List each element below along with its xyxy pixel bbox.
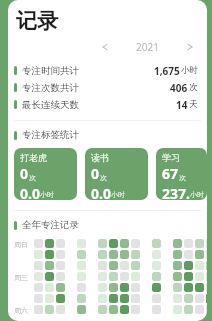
button[interactable]: 专注时间共计 bbox=[8, 62, 207, 79]
staticText: 1,675 bbox=[154, 64, 180, 78]
staticText: 次 bbox=[100, 173, 107, 182]
staticText: 67 bbox=[162, 164, 179, 183]
staticText: 全年专注记录 bbox=[22, 219, 79, 231]
button[interactable]: 学习 bbox=[156, 148, 207, 200]
button[interactable]: 专注次数共计 bbox=[8, 79, 207, 96]
staticText: 记录 bbox=[16, 8, 58, 34]
button[interactable]: 读书 bbox=[85, 148, 148, 200]
staticText: 0.0 bbox=[91, 184, 111, 200]
staticText: 专注标签统计 bbox=[22, 129, 79, 141]
staticText: 小时 bbox=[40, 190, 54, 199]
button[interactable]: 打老虎 bbox=[14, 148, 77, 200]
staticText: 次 bbox=[179, 173, 186, 182]
staticText: 最长连续天数 bbox=[22, 99, 79, 111]
staticText: 周三 bbox=[14, 273, 28, 282]
staticText: 学习 bbox=[162, 152, 180, 163]
staticText: 0 bbox=[20, 164, 29, 183]
staticText: 237. bbox=[162, 184, 190, 200]
button[interactable]: Previous year bbox=[96, 38, 114, 56]
staticText: 0 bbox=[91, 164, 100, 183]
staticText: 专注时间共计 bbox=[22, 65, 79, 77]
staticText: 专注次数共计 bbox=[22, 82, 79, 94]
button[interactable]: Next year bbox=[181, 38, 199, 56]
staticText: 0.0 bbox=[20, 184, 40, 200]
staticText: 406 bbox=[170, 81, 188, 95]
button[interactable]: 最长连续天数 bbox=[8, 96, 207, 113]
staticText: 次 bbox=[189, 82, 198, 93]
staticText: 读书 bbox=[91, 152, 109, 163]
staticText: 打老虎 bbox=[20, 152, 47, 163]
staticText: 小时 bbox=[111, 190, 125, 199]
staticText: 14 bbox=[176, 98, 188, 112]
staticText: 2021 bbox=[136, 40, 159, 54]
staticText: 天 bbox=[189, 99, 198, 110]
staticText: 次 bbox=[29, 173, 36, 182]
staticText: 周日 bbox=[14, 240, 28, 249]
staticText: 周六 bbox=[14, 306, 28, 315]
staticText: 小时 bbox=[181, 65, 198, 76]
staticText: 小时 bbox=[190, 190, 204, 199]
